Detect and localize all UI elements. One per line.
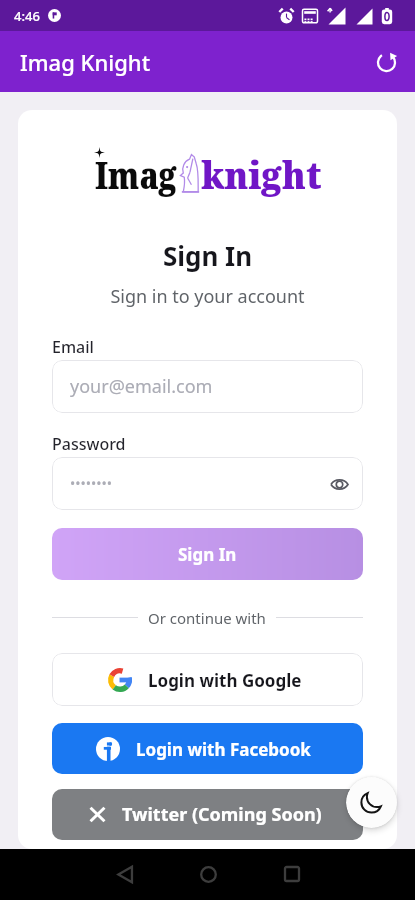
button[interactable]: Back (103, 852, 147, 896)
staticText: Password (52, 433, 126, 455)
staticText: Sign in to your account (18, 284, 397, 309)
staticText: Or continue with (148, 608, 266, 626)
staticText: Sign In (18, 238, 397, 273)
button[interactable]: Recent apps (270, 852, 314, 896)
button[interactable]: Login with Google (52, 653, 363, 706)
staticText: Sign In (178, 543, 237, 566)
staticText: Login with Google (148, 669, 302, 692)
staticText: Imag Knight (20, 47, 151, 77)
button[interactable]: •••••••• (52, 457, 363, 510)
staticText: 4:46 (14, 7, 40, 25)
button[interactable]: Refresh (366, 42, 406, 82)
staticText: your@email.com (70, 374, 213, 399)
button[interactable]: Show password (323, 468, 355, 500)
button[interactable]: Twitter (Coming Soon) (52, 789, 363, 840)
button[interactable]: Login with Facebook (52, 723, 363, 774)
staticText: Imag (95, 148, 177, 200)
button[interactable]: Home (186, 852, 230, 896)
staticText: Twitter (Coming Soon) (122, 802, 322, 827)
button[interactable]: Sign In (52, 528, 363, 580)
staticText: Login with Facebook (136, 738, 311, 761)
button[interactable]: your@email.com (52, 360, 363, 413)
staticText: Email (52, 336, 94, 358)
staticText: •••••••• (70, 474, 113, 493)
staticText: knight (201, 148, 321, 200)
button[interactable]: Toggle dark mode (346, 777, 397, 828)
